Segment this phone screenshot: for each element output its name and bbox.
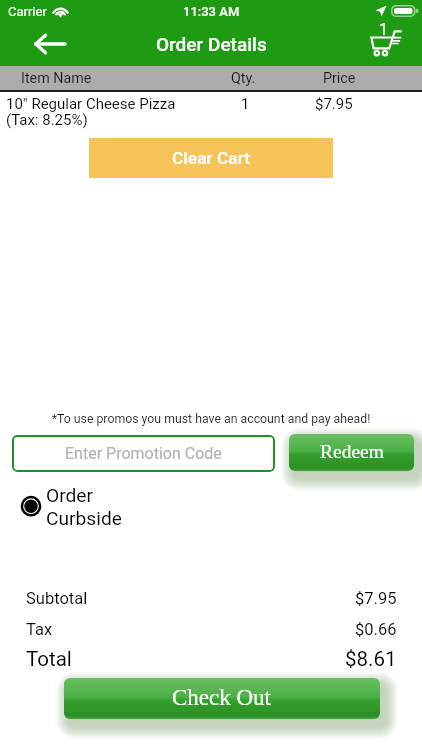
staticText: Carrier xyxy=(8,4,47,19)
staticText: Qty. xyxy=(231,70,256,87)
button[interactable]: Clear Cart xyxy=(89,138,333,178)
button[interactable]: Enter Promotion Code xyxy=(12,435,275,472)
staticText: Redeem xyxy=(320,441,384,463)
staticText: 11:33 AM xyxy=(183,4,240,19)
staticText: Item Name xyxy=(21,70,92,87)
staticText: Order Details xyxy=(156,33,267,55)
staticText: $7.95 xyxy=(355,589,397,608)
staticText: 1 xyxy=(379,20,388,39)
staticText: (Tax: 8.25%) xyxy=(6,111,88,129)
staticText: Price xyxy=(323,70,356,87)
button[interactable]: Order xyxy=(16,484,156,528)
staticText: Check Out xyxy=(172,685,272,710)
staticText: *To use promos you must have an account … xyxy=(0,412,422,426)
staticText: Curbside xyxy=(46,507,122,528)
button[interactable]: Back xyxy=(24,24,76,64)
staticText: Enter Promotion Code xyxy=(65,444,222,463)
staticText: $8.61 xyxy=(345,647,397,671)
staticText: Clear Cart xyxy=(172,148,251,168)
staticText: $7.95 xyxy=(315,95,353,113)
staticText: 1 xyxy=(241,95,250,113)
button[interactable]: Check Out xyxy=(64,678,380,719)
staticText: 10" Regular Cheese Pizza xyxy=(6,95,176,113)
staticText: Order xyxy=(46,484,94,507)
staticText: $0.66 xyxy=(355,620,397,639)
button[interactable]: Redeem xyxy=(289,434,414,471)
staticText: Tax xyxy=(26,620,53,639)
button[interactable]: Shopping cart xyxy=(362,22,416,66)
staticText: Total xyxy=(26,647,72,671)
staticText: Subtotal xyxy=(26,589,88,608)
